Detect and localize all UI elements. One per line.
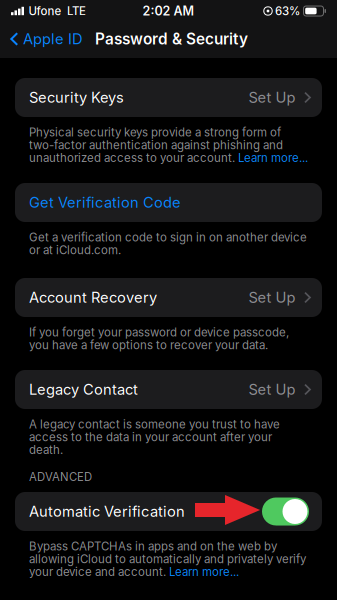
- button[interactable]: Legacy Contact: [15, 370, 322, 409]
- staticText: Set Up: [248, 289, 295, 306]
- staticText: LTE: [67, 4, 86, 18]
- staticText: two-factor authentication against phishi…: [29, 139, 283, 151]
- staticText: If you forget your password or device pa…: [29, 326, 289, 338]
- button[interactable]: Account Recovery: [15, 278, 322, 317]
- staticText: allowing iCloud to automatically and pri…: [29, 553, 306, 565]
- button[interactable]: Apple ID: [0, 25, 89, 53]
- staticText: Learn more...: [169, 566, 239, 578]
- staticText: Security Keys: [29, 89, 124, 106]
- staticText: Password & Security: [95, 30, 248, 48]
- staticText: you have a few options to recover your d…: [29, 339, 268, 351]
- button[interactable]: Automatic Verification: [15, 492, 322, 531]
- staticText: Ufone: [28, 4, 61, 18]
- staticText: Get Verification Code: [29, 194, 181, 211]
- staticText: Account Recovery: [29, 289, 157, 306]
- staticText: your device and account.: [29, 566, 169, 578]
- button[interactable]: Security Keys: [15, 78, 322, 117]
- staticText: Learn more...: [238, 152, 308, 164]
- button[interactable]: Get Verification Code: [15, 183, 322, 222]
- staticText: Automatic Verification: [29, 503, 185, 520]
- staticText: Set Up: [248, 381, 295, 398]
- staticText: Set Up: [248, 89, 295, 106]
- staticText: death.: [29, 444, 63, 456]
- staticText: Get a verification code to sign in on an…: [29, 231, 307, 243]
- staticText: Physical security keys provide a strong …: [29, 126, 281, 138]
- staticText: Apple ID: [23, 30, 83, 48]
- staticText: 63%: [275, 4, 300, 18]
- staticText: or at iCloud.com.: [29, 244, 121, 256]
- staticText: 2:02 AM: [142, 3, 194, 19]
- staticText: A legacy contact is someone you trust to…: [29, 418, 280, 430]
- staticText: Bypass CAPTCHAs in apps and on the web b…: [29, 540, 277, 552]
- staticText: access to the data in your account after…: [29, 431, 272, 443]
- staticText: ADVANCED: [29, 470, 92, 484]
- staticText: Legacy Contact: [29, 381, 138, 398]
- staticText: unauthorized access to your account.: [29, 152, 238, 164]
